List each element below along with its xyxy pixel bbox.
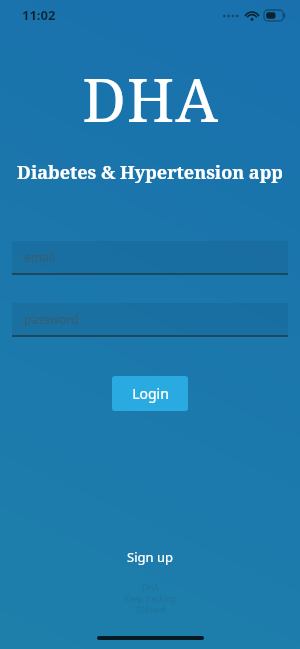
staticText: Sign up [127, 548, 173, 566]
button[interactable]: password [12, 303, 288, 337]
staticText: password [24, 311, 79, 327]
button[interactable]: Login [112, 376, 188, 411]
staticText: DHA [142, 582, 159, 593]
button[interactable]: Sign up [119, 546, 181, 568]
staticText: Diabetes & Hypertension app [17, 160, 283, 185]
staticText: Login [132, 384, 169, 403]
staticText: Keep tracking [124, 593, 176, 604]
staticText: DHA [82, 58, 219, 140]
staticText: 11:02 [22, 6, 56, 24]
button[interactable]: email [12, 241, 288, 275]
staticText: ©Nawaf [135, 604, 166, 615]
staticText: email [24, 249, 55, 265]
